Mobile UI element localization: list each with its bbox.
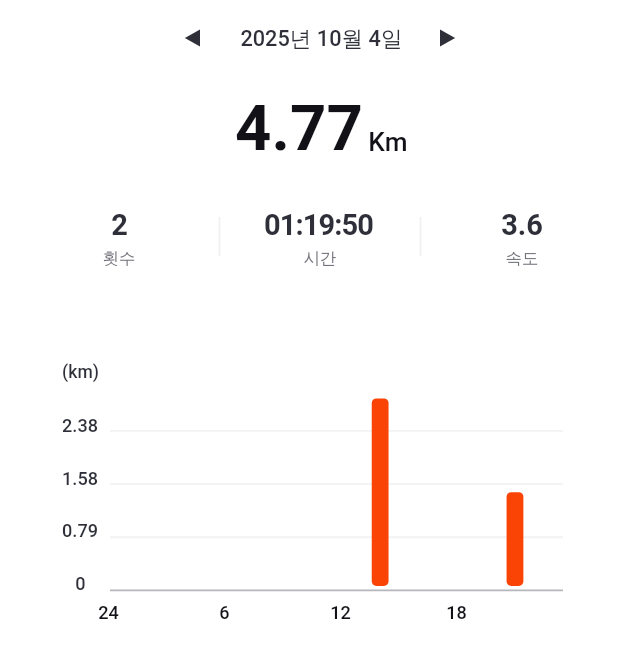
staticText: 01:19:50: [264, 208, 373, 242]
button[interactable]: Previous day: [171, 16, 215, 60]
staticText: 3.6: [501, 208, 543, 242]
staticText: 18: [446, 602, 467, 623]
staticText: (km): [62, 362, 99, 383]
staticText: 횟수: [102, 248, 136, 269]
staticText: 2.38: [62, 415, 98, 436]
staticText: Km: [368, 127, 408, 158]
staticText: 6: [219, 602, 230, 623]
staticText: 시간: [303, 248, 337, 269]
staticText: 2025년 10월 4일: [240, 25, 403, 52]
button[interactable]: Next day: [424, 16, 468, 60]
staticText: 24: [98, 602, 119, 623]
staticText: 12: [330, 602, 351, 623]
staticText: 2: [111, 208, 128, 242]
button[interactable]: 2025년 10월 4일: [211, 16, 431, 60]
button[interactable]: 01:19:50: [225, 202, 415, 274]
staticText: 0.79: [62, 520, 98, 541]
staticText: 0: [75, 573, 86, 594]
button[interactable]: 3.6: [427, 202, 617, 274]
staticText: 속도: [505, 248, 539, 269]
staticText: 4.77: [235, 91, 363, 165]
staticText: 1.58: [62, 468, 98, 489]
button[interactable]: 2: [24, 202, 214, 274]
